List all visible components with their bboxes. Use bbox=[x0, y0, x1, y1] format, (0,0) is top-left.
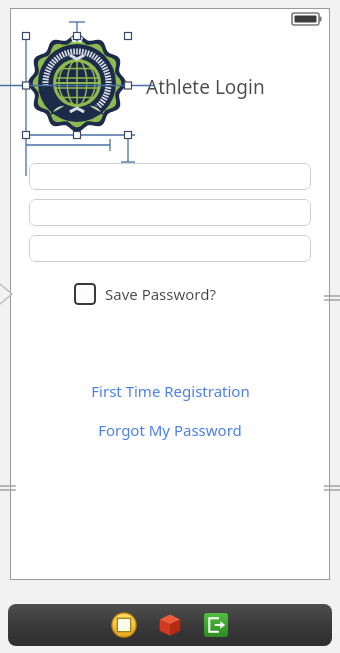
staticText: Athlete Login bbox=[146, 74, 265, 100]
button[interactable]: Export bbox=[203, 612, 229, 638]
button[interactable] bbox=[29, 235, 311, 262]
staticText: First Time Registration bbox=[91, 381, 250, 401]
button[interactable] bbox=[29, 163, 311, 190]
button[interactable]: Build bbox=[157, 612, 183, 638]
button[interactable] bbox=[29, 199, 311, 226]
button[interactable]: Preview bbox=[111, 612, 137, 638]
button[interactable]: Save Password? bbox=[74, 281, 216, 307]
button[interactable]: First Time Registration bbox=[10, 380, 330, 402]
staticText: Save Password? bbox=[105, 284, 216, 304]
button[interactable]: Forgot My Password bbox=[10, 419, 330, 441]
staticText: Forgot My Password bbox=[98, 420, 242, 440]
